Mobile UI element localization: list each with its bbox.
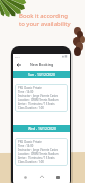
- button[interactable]: Wed - 16/12/2020: [13, 125, 70, 132]
- staticText: Book it according: [19, 12, 68, 20]
- staticText: Class Duration : 1:00: [18, 106, 44, 110]
- button[interactable]: Back: [21, 173, 29, 181]
- button[interactable]: Sun - 13/12/2020: [13, 71, 70, 78]
- button[interactable]: Home: [38, 173, 46, 181]
- staticText: Class Duration : 1:00: [18, 160, 44, 164]
- staticText: Location : CRBM Tennis Stadium: [18, 152, 59, 156]
- staticText: PKG Classic Private: [18, 140, 42, 144]
- staticText: Location : CRBM Tennis Stadium: [18, 98, 59, 102]
- staticText: to your availability: [19, 20, 71, 28]
- staticText: Instructor : Jorge Vicente Castro: [18, 94, 59, 98]
- button[interactable]: Back: [15, 61, 23, 69]
- staticText: Sun - 13/12/2020: [28, 72, 55, 77]
- staticText: PKG Classic Private: [18, 86, 42, 90]
- staticText: Arrive : 15 minutes / 15 Seats: [18, 156, 55, 160]
- staticText: 9:41: [15, 55, 20, 58]
- staticText: Wed - 16/12/2020: [28, 126, 56, 131]
- button[interactable]: PKG Classic Private: [15, 138, 68, 166]
- staticText: Instructor : Jorge Vicente Castro: [18, 148, 59, 152]
- staticText: New Booking: [30, 62, 54, 67]
- staticText: Time : 14:00: [18, 90, 34, 94]
- button[interactable]: PKG Classic Private: [15, 84, 68, 112]
- button[interactable]: Recents: [54, 173, 62, 181]
- staticText: Arrive : 15 minutes / 15 Seats: [18, 102, 55, 106]
- staticText: Time : 14:00: [18, 144, 34, 148]
